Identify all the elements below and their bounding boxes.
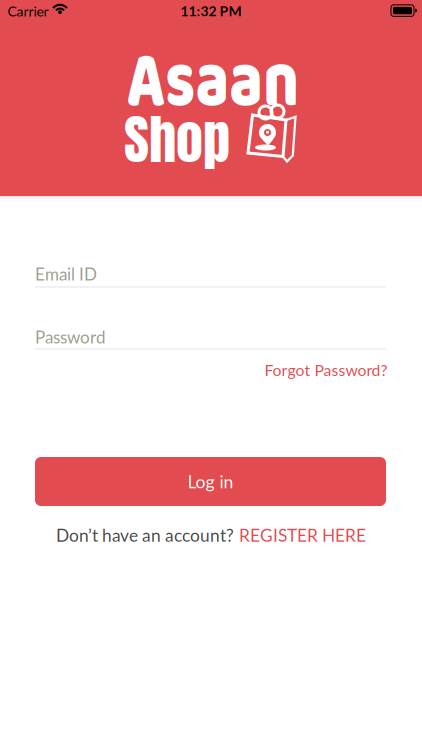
button[interactable]: Log in <box>35 457 386 506</box>
staticText: Carrier <box>7 3 48 19</box>
staticText: Don’t have an account? <box>56 525 234 545</box>
staticText: Shop <box>124 98 230 180</box>
secureTextField[interactable]: Password <box>35 327 386 347</box>
staticText: REGISTER HERE <box>239 525 366 545</box>
staticText: Email ID <box>35 264 97 284</box>
textField[interactable]: Email ID <box>35 264 386 284</box>
staticText: Asaan <box>100 18 325 147</box>
staticText: Forgot Password? <box>264 361 387 379</box>
button[interactable]: Forgot Password? <box>264 361 387 379</box>
staticText: Log in <box>187 471 233 492</box>
button[interactable]: REGISTER HERE <box>239 525 366 545</box>
staticText: 11:32 PM <box>180 2 241 19</box>
staticText: Password <box>35 327 106 347</box>
